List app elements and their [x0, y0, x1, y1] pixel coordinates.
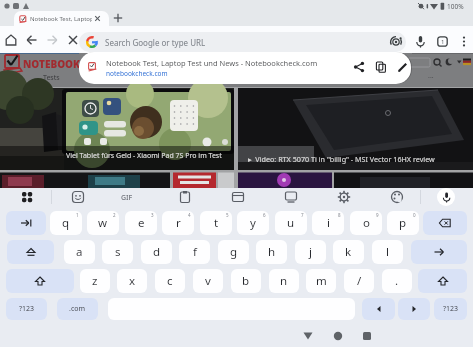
- staticText: 1: [76, 212, 79, 218]
- staticText: q: [62, 215, 70, 231]
- button[interactable]: [390, 36, 402, 48]
- button[interactable]: k: [333, 240, 364, 264]
- staticText: w: [98, 215, 108, 231]
- button[interactable]: g: [218, 240, 249, 264]
- staticText: b: [242, 273, 250, 289]
- button[interactable]: [6, 269, 74, 293]
- button[interactable]: [362, 298, 395, 320]
- button[interactable]: [411, 240, 467, 264]
- button[interactable]: w: [87, 211, 119, 235]
- staticText: m: [316, 273, 327, 289]
- button[interactable]: [45, 33, 59, 47]
- staticText: e: [138, 215, 145, 231]
- staticText: 8: [338, 212, 341, 218]
- staticText: Viel Tablet fürs Geld - Xiaomi Pad 7S Pr…: [66, 151, 222, 161]
- button[interactable]: h: [256, 240, 287, 264]
- button[interactable]: [414, 35, 427, 49]
- staticText: 100%: [447, 2, 464, 11]
- button[interactable]: t: [200, 211, 232, 235]
- button[interactable]: [359, 330, 375, 342]
- staticText: 9: [376, 212, 379, 218]
- staticText: o: [363, 215, 370, 231]
- button[interactable]: [300, 330, 316, 342]
- button[interactable]: [94, 15, 101, 22]
- button[interactable]: GIF: [121, 193, 133, 203]
- staticText: notebookcheck.com: [106, 69, 168, 78]
- button[interactable]: [14, 11, 109, 26]
- button[interactable]: [375, 61, 387, 73]
- button[interactable]: j: [295, 240, 326, 264]
- button[interactable]: [284, 190, 298, 204]
- button[interactable]: [71, 190, 85, 204]
- button[interactable]: f: [179, 240, 210, 264]
- button[interactable]: p: [387, 211, 419, 235]
- button[interactable]: [397, 61, 409, 73]
- staticText: ▸ Video: RTX 5070 Ti in "billig" - MSI V…: [248, 154, 435, 164]
- button[interactable]: q: [50, 211, 82, 235]
- button[interactable]: i: [312, 211, 344, 235]
- button[interactable]: .: [382, 269, 412, 293]
- staticText: j: [309, 244, 312, 260]
- button[interactable]: [20, 190, 34, 204]
- staticText: 2: [113, 212, 116, 218]
- button[interactable]: [4, 33, 18, 47]
- staticText: l: [386, 244, 389, 260]
- staticText: ?123: [443, 304, 459, 314]
- staticText: c: [167, 273, 173, 289]
- button[interactable]: [423, 211, 467, 235]
- button[interactable]: [330, 330, 346, 342]
- staticText: /: [357, 273, 362, 289]
- staticText: f: [193, 244, 197, 260]
- button[interactable]: r: [162, 211, 194, 235]
- staticText: s: [115, 244, 121, 260]
- button[interactable]: m: [306, 269, 336, 293]
- button[interactable]: [337, 190, 351, 204]
- button[interactable]: ?123: [6, 298, 47, 320]
- staticText: h: [268, 244, 276, 260]
- button[interactable]: [79, 32, 406, 52]
- button[interactable]: e: [125, 211, 157, 235]
- button[interactable]: /: [344, 269, 374, 293]
- staticText: Notebook Test, Laptop Test: [30, 15, 92, 23]
- button[interactable]: [66, 33, 80, 47]
- button[interactable]: [6, 211, 46, 235]
- button[interactable]: [458, 35, 470, 48]
- staticText: v: [205, 273, 211, 289]
- staticText: .: [395, 273, 399, 289]
- staticText: 4: [188, 212, 191, 218]
- button[interactable]: c: [155, 269, 185, 293]
- staticText: Search Google or type URL: [105, 37, 206, 48]
- staticText: Tests: [43, 73, 60, 83]
- button[interactable]: [353, 61, 365, 73]
- button[interactable]: 1: [436, 35, 449, 48]
- button[interactable]: [79, 52, 411, 84]
- button[interactable]: x: [117, 269, 147, 293]
- button[interactable]: [178, 190, 192, 204]
- button[interactable]: .com: [57, 298, 98, 320]
- button[interactable]: [231, 190, 245, 204]
- button[interactable]: b: [231, 269, 261, 293]
- button[interactable]: z: [80, 269, 110, 293]
- button[interactable]: [390, 190, 404, 204]
- button[interactable]: [398, 298, 430, 320]
- button[interactable]: [437, 188, 455, 206]
- button[interactable]: o: [350, 211, 382, 235]
- button[interactable]: n: [269, 269, 299, 293]
- button[interactable]: v: [193, 269, 223, 293]
- button[interactable]: [113, 13, 123, 23]
- button[interactable]: y: [237, 211, 269, 235]
- button[interactable]: u: [275, 211, 307, 235]
- button[interactable]: ?123: [434, 298, 467, 320]
- staticText: .com: [69, 304, 86, 314]
- button[interactable]: a: [64, 240, 95, 264]
- staticText: r: [176, 215, 181, 231]
- button[interactable]: d: [141, 240, 172, 264]
- button[interactable]: [25, 33, 39, 47]
- button[interactable]: s: [102, 240, 133, 264]
- button[interactable]: [7, 240, 54, 264]
- button[interactable]: [418, 269, 467, 293]
- staticText: g: [230, 244, 238, 260]
- staticText: i: [327, 215, 330, 231]
- button[interactable]: l: [372, 240, 403, 264]
